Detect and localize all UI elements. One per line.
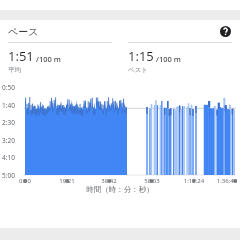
staticText: 0:50 (2, 83, 15, 92)
staticText: 1:36:44 (214, 177, 240, 185)
staticText: 38:42 (96, 177, 122, 185)
staticText: 58:03 (139, 177, 165, 185)
staticText: 2:30 (2, 118, 15, 127)
staticText: /100 m (36, 54, 61, 64)
staticText: ベスト (128, 66, 148, 74)
button[interactable]: 1:15 (120, 42, 240, 74)
staticText: ペース (8, 25, 39, 38)
staticText: 1:17:24 (181, 177, 207, 185)
button[interactable]: ヘルプ (218, 24, 232, 38)
staticText: 平均 (8, 66, 21, 74)
staticText: 19:21 (54, 177, 80, 185)
staticText: 3:20 (2, 136, 15, 145)
staticText: 時間（時：分：秒） (86, 185, 154, 194)
staticText: 5:00 (2, 171, 15, 180)
staticText: 1:15 (128, 47, 154, 65)
staticText: 4:10 (2, 153, 15, 162)
button[interactable]: 1:51 (0, 42, 120, 74)
staticText: 0:00 (12, 177, 38, 185)
staticText: 1:51 (8, 47, 34, 65)
staticText: /100 m (156, 54, 181, 64)
staticText: 1:40 (2, 101, 15, 110)
